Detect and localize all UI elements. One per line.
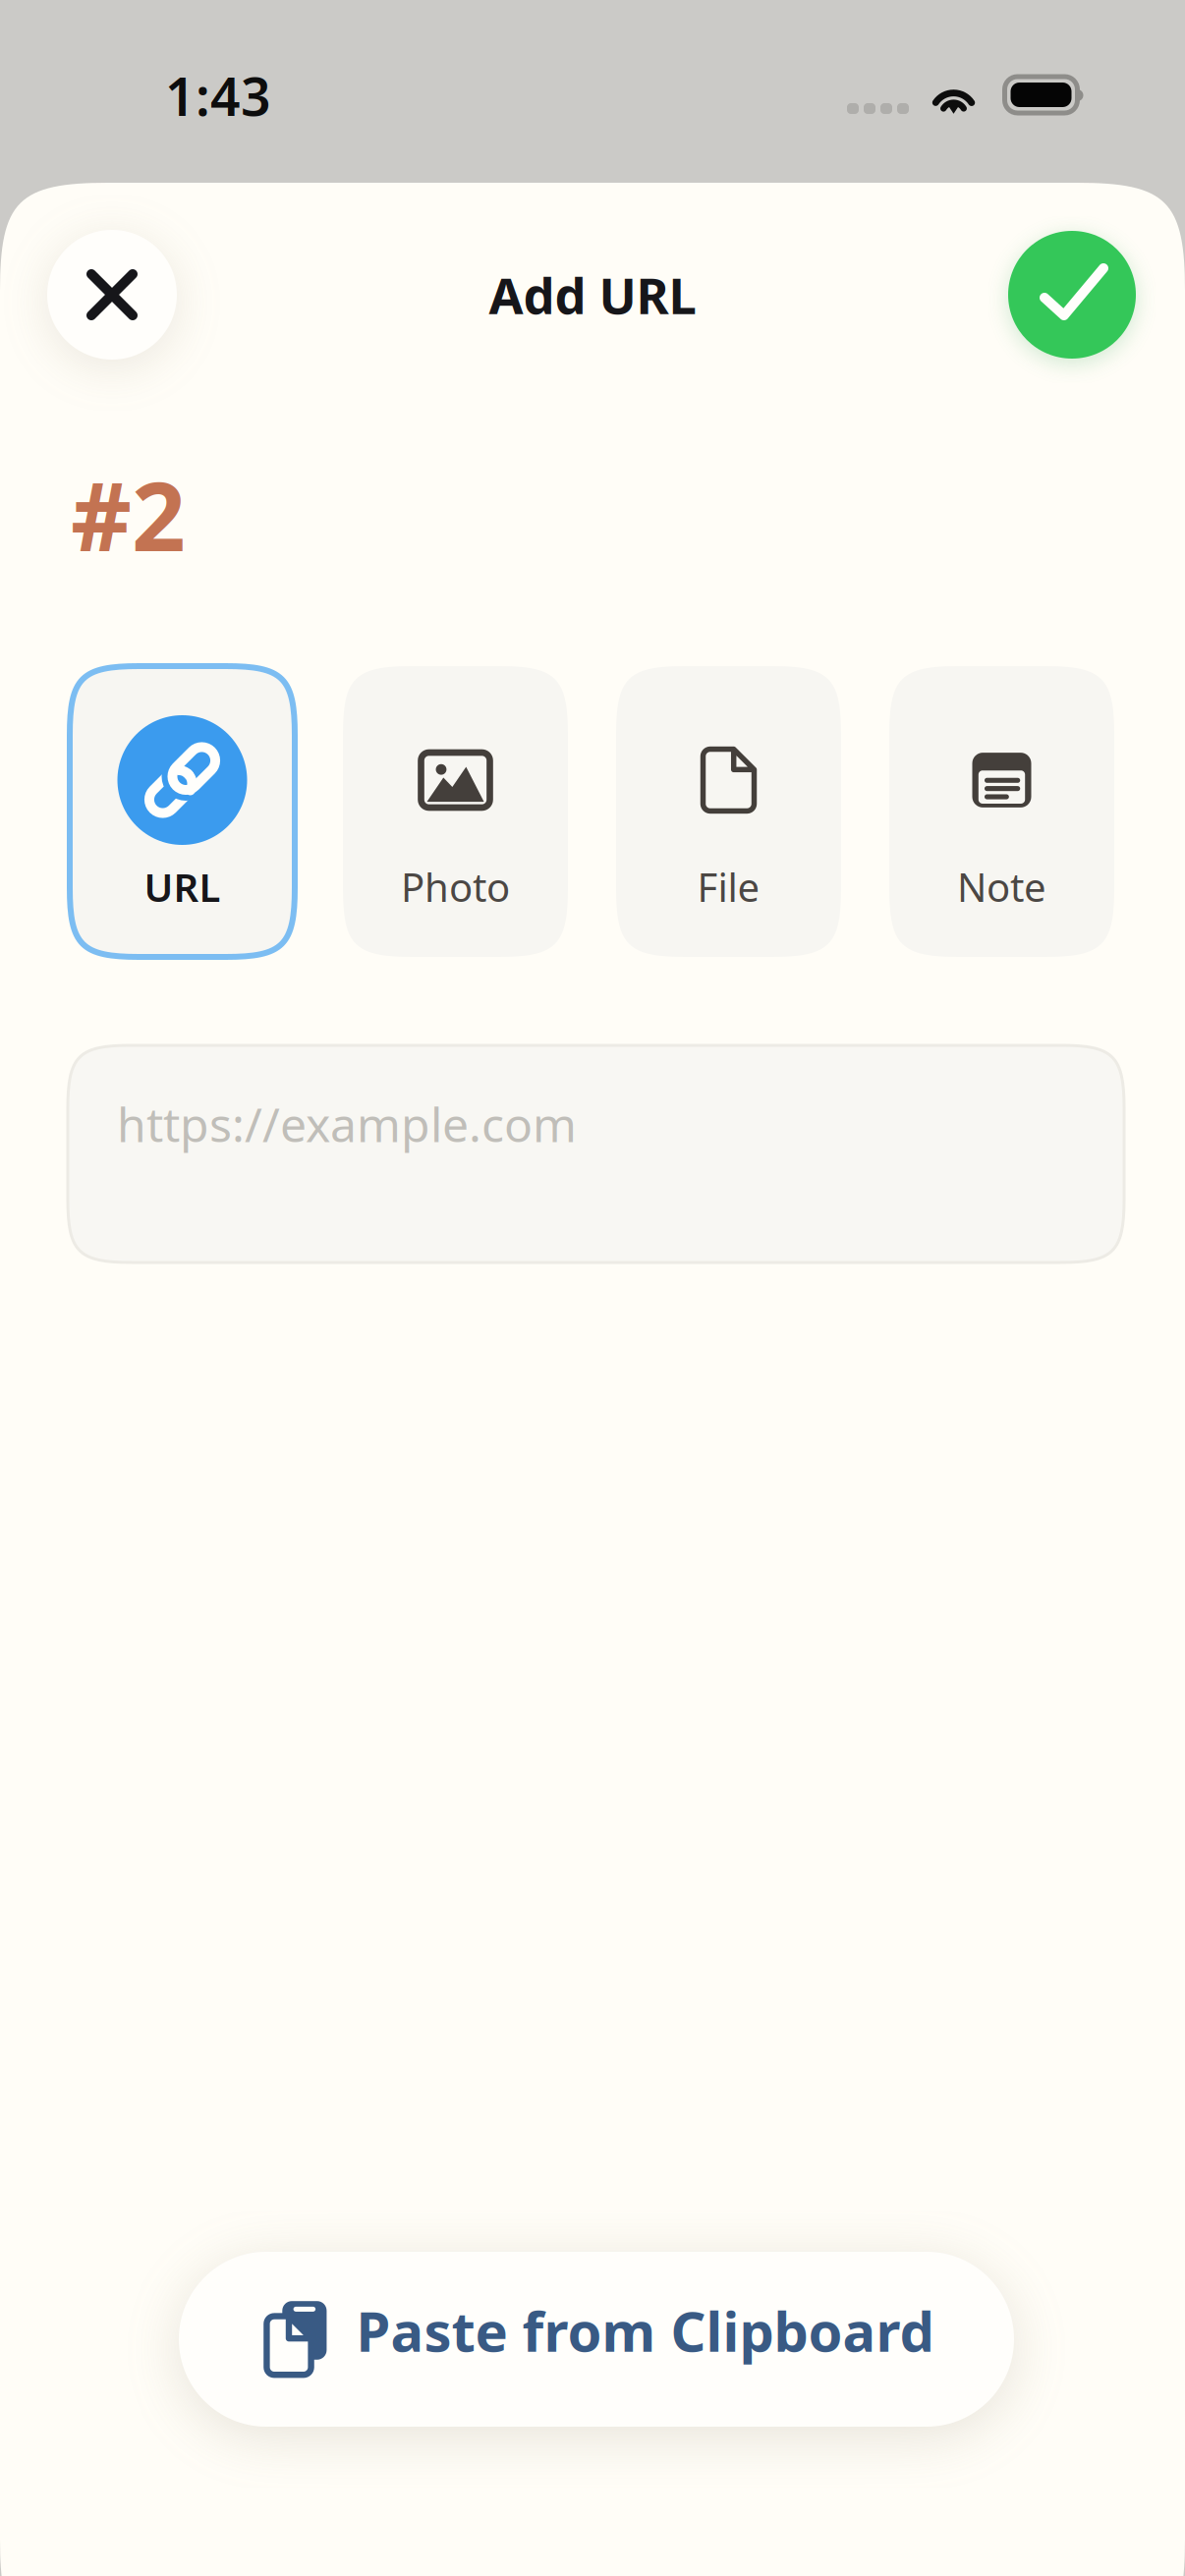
staticText: https://example.com	[117, 1092, 577, 1155]
staticText: File	[697, 861, 760, 913]
button[interactable]: Photo	[343, 666, 568, 957]
button[interactable]: Save	[1008, 231, 1136, 359]
button[interactable]: Close	[47, 230, 177, 360]
button[interactable]: Paste from Clipboard	[179, 2252, 1014, 2427]
button[interactable]: URL	[70, 666, 295, 957]
staticText: Note	[957, 861, 1046, 913]
staticText: URL	[144, 861, 221, 913]
staticText: #2	[71, 452, 186, 577]
button[interactable]: Note	[889, 666, 1114, 957]
staticText: Add URL	[489, 262, 696, 328]
staticText: Paste from Clipboard	[356, 2294, 934, 2367]
button[interactable]: File	[616, 666, 841, 957]
staticText: Photo	[401, 861, 510, 913]
staticText: 1:43	[165, 61, 271, 130]
